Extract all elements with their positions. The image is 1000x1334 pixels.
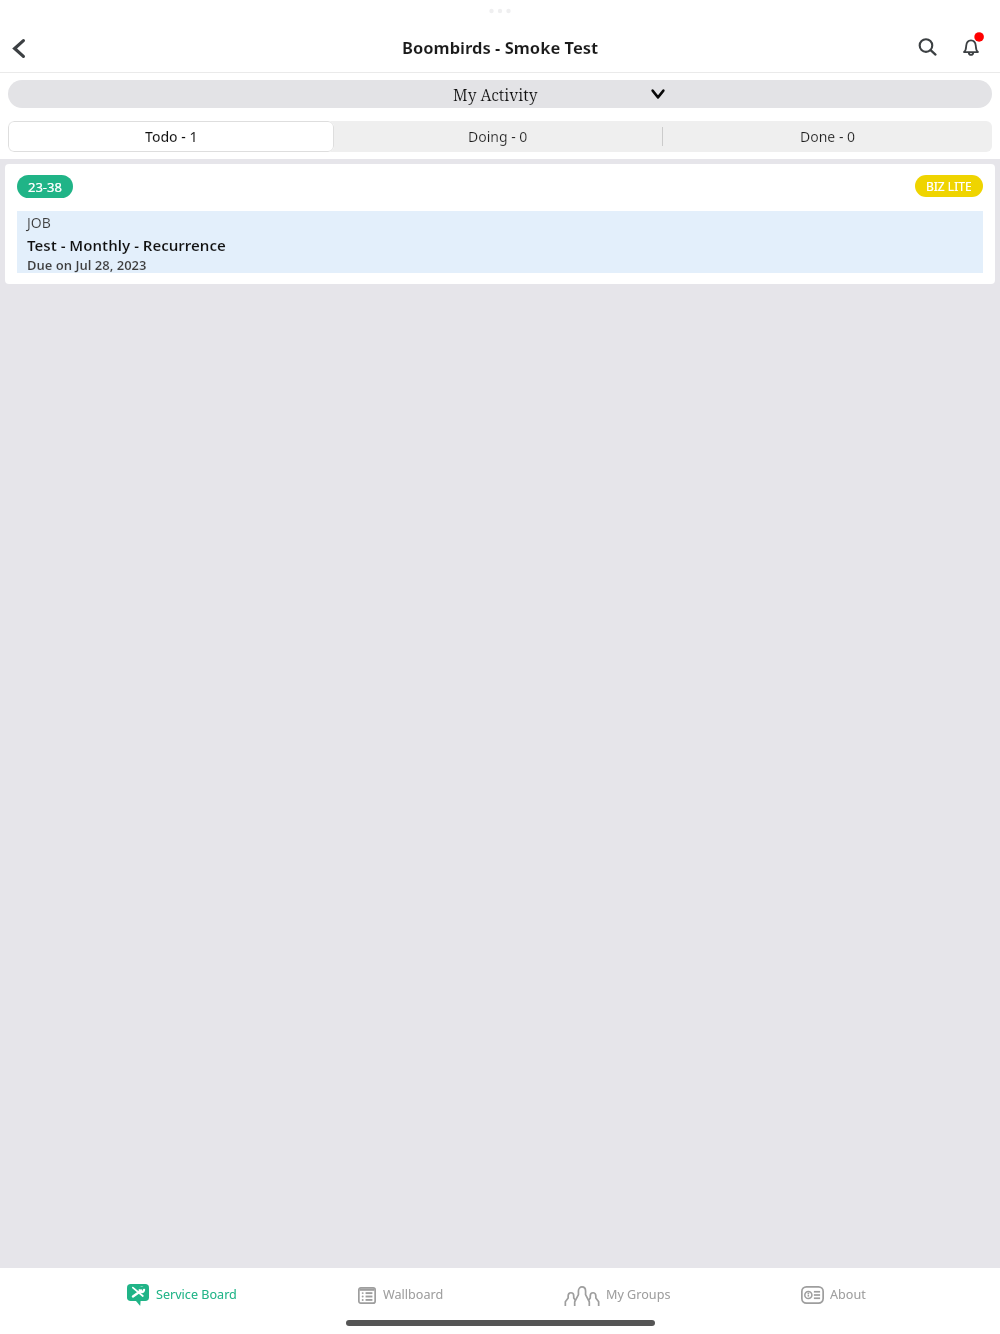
button[interactable]: My Activity (8, 80, 992, 108)
staticText: My Groups (606, 1286, 671, 1303)
button[interactable]: Search (903, 23, 951, 71)
button[interactable]: Service Board (0, 1268, 250, 1320)
button[interactable]: Wallboard (250, 1268, 500, 1320)
button[interactable]: Todo - 1 (8, 121, 334, 152)
staticText: Test - Monthly - Recurrence (27, 235, 226, 255)
staticText: Todo - 1 (145, 127, 198, 146)
staticText: Boombirds - Smoke Test (402, 36, 599, 58)
button[interactable]: Done - 0 (663, 121, 992, 152)
staticText: 23-38 (28, 178, 62, 196)
staticText: About (830, 1286, 866, 1303)
button[interactable]: Doing - 0 (334, 121, 662, 152)
button[interactable]: My Groups (500, 1268, 750, 1320)
staticText: Due on Jul 28, 2023 (27, 256, 147, 274)
staticText: My Activity (453, 84, 538, 105)
button[interactable]: 23-38 (5, 164, 995, 284)
button[interactable]: About (750, 1268, 1000, 1320)
staticText: Doing - 0 (468, 127, 528, 146)
staticText: BIZ LITE (926, 178, 972, 194)
staticText: Done - 0 (800, 127, 856, 146)
button[interactable]: Back (0, 24, 48, 72)
button[interactable]: Notifications (948, 23, 996, 71)
staticText: Wallboard (383, 1286, 444, 1303)
staticText: JOB (27, 213, 51, 232)
staticText: Service Board (156, 1286, 237, 1303)
